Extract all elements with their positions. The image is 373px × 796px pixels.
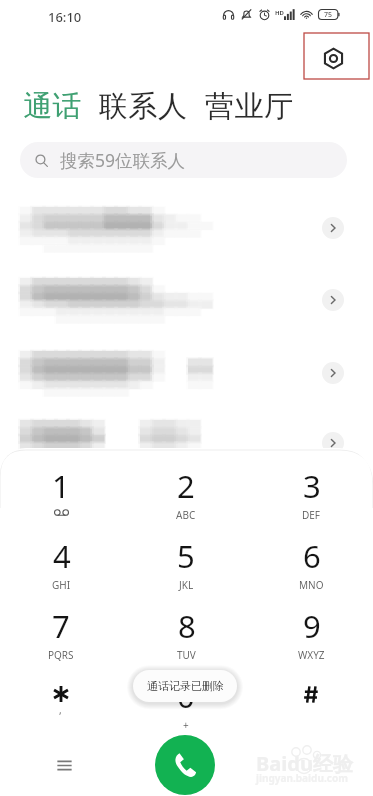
staticText: 0 [177, 675, 195, 717]
staticText: 16:10 [48, 8, 82, 26]
staticText: 3 [303, 465, 321, 507]
button[interactable]: 9 [269, 605, 353, 663]
staticText: 搜索59位联系人 [60, 148, 186, 172]
button[interactable]: 3 [269, 465, 353, 523]
button[interactable]: Details [322, 289, 344, 311]
staticText: TUV [177, 648, 196, 662]
staticText: 4 [53, 535, 71, 577]
staticText: 1 [52, 465, 70, 507]
button[interactable]: 5 [144, 535, 228, 593]
staticText: 75 [324, 10, 333, 20]
button[interactable] [0, 278, 373, 330]
staticText: PQRS [48, 648, 74, 662]
staticText: 7 [52, 605, 70, 647]
button[interactable]: 6 [269, 535, 353, 593]
staticText: + [183, 718, 189, 732]
button[interactable]: 4 [19, 535, 103, 593]
staticText: JKL [179, 578, 194, 592]
staticText: 8 [178, 605, 196, 647]
button[interactable]: Call [155, 735, 215, 795]
button[interactable]: 通话 [23, 88, 82, 125]
staticText: GHI [52, 578, 71, 592]
staticText: ABC [176, 508, 196, 522]
button[interactable]: 1 [19, 465, 103, 523]
staticText: MNO [299, 578, 324, 592]
button[interactable]: Menu [48, 749, 80, 781]
staticText: 5 [177, 535, 195, 577]
button[interactable]: 0 [144, 675, 228, 733]
button[interactable] [0, 420, 373, 472]
staticText: 2 [177, 465, 195, 507]
button[interactable]: Details [322, 217, 344, 239]
staticText: jingyan.baidu.com [256, 771, 348, 785]
button[interactable]: 8 [144, 605, 228, 663]
button[interactable]: Details [322, 432, 344, 454]
button[interactable] [0, 351, 373, 403]
button[interactable]: Pound [269, 675, 353, 733]
button[interactable]: 7 [19, 605, 103, 663]
button[interactable]: Settings [317, 42, 349, 74]
staticText: Baidu经验 [256, 750, 353, 777]
staticText: , [59, 703, 62, 717]
staticText: 9 [303, 605, 321, 647]
button[interactable]: Star [19, 675, 103, 733]
staticText: 通话记录已删除 [147, 679, 224, 693]
button[interactable]: Details [322, 362, 344, 384]
button[interactable]: 搜索59位联系人 [20, 142, 347, 178]
staticText: DEF [302, 508, 321, 522]
button[interactable]: 联系人 [99, 88, 188, 125]
staticText: 6 [303, 535, 321, 577]
button[interactable]: 营业厅 [205, 88, 294, 125]
button[interactable]: 2 [144, 465, 228, 523]
staticText: WXYZ [298, 648, 325, 662]
staticText: HD [275, 9, 284, 17]
button[interactable] [0, 207, 373, 259]
